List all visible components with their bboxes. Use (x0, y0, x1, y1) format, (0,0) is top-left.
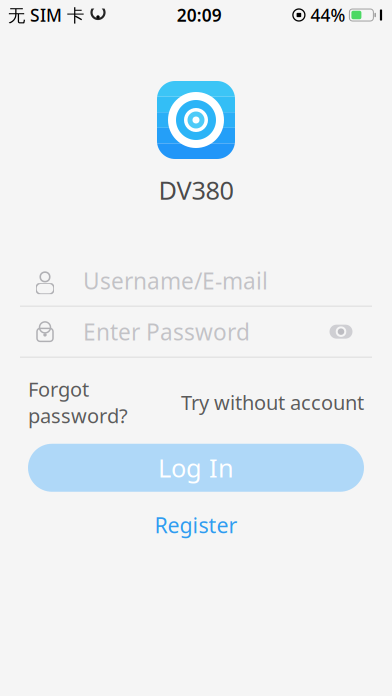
staticText: Register (154, 511, 237, 539)
staticText: 20:09 (177, 3, 222, 26)
staticText: Forgot password? (28, 376, 128, 429)
button[interactable]: Log In (28, 444, 364, 492)
staticText: Username/E-mail (83, 266, 268, 296)
button[interactable]: Try without account (181, 389, 364, 415)
staticText: 无 SIM 卡 (8, 3, 84, 26)
staticText: Try without account (181, 389, 364, 415)
staticText: 44% (310, 3, 345, 26)
button[interactable]: Forgot password? (28, 376, 128, 429)
button[interactable]: Show password (324, 315, 358, 349)
staticText: DV380 (158, 173, 233, 207)
staticText: Enter Password (83, 317, 250, 347)
button[interactable]: Register (154, 511, 237, 539)
staticText: Log In (158, 451, 234, 484)
